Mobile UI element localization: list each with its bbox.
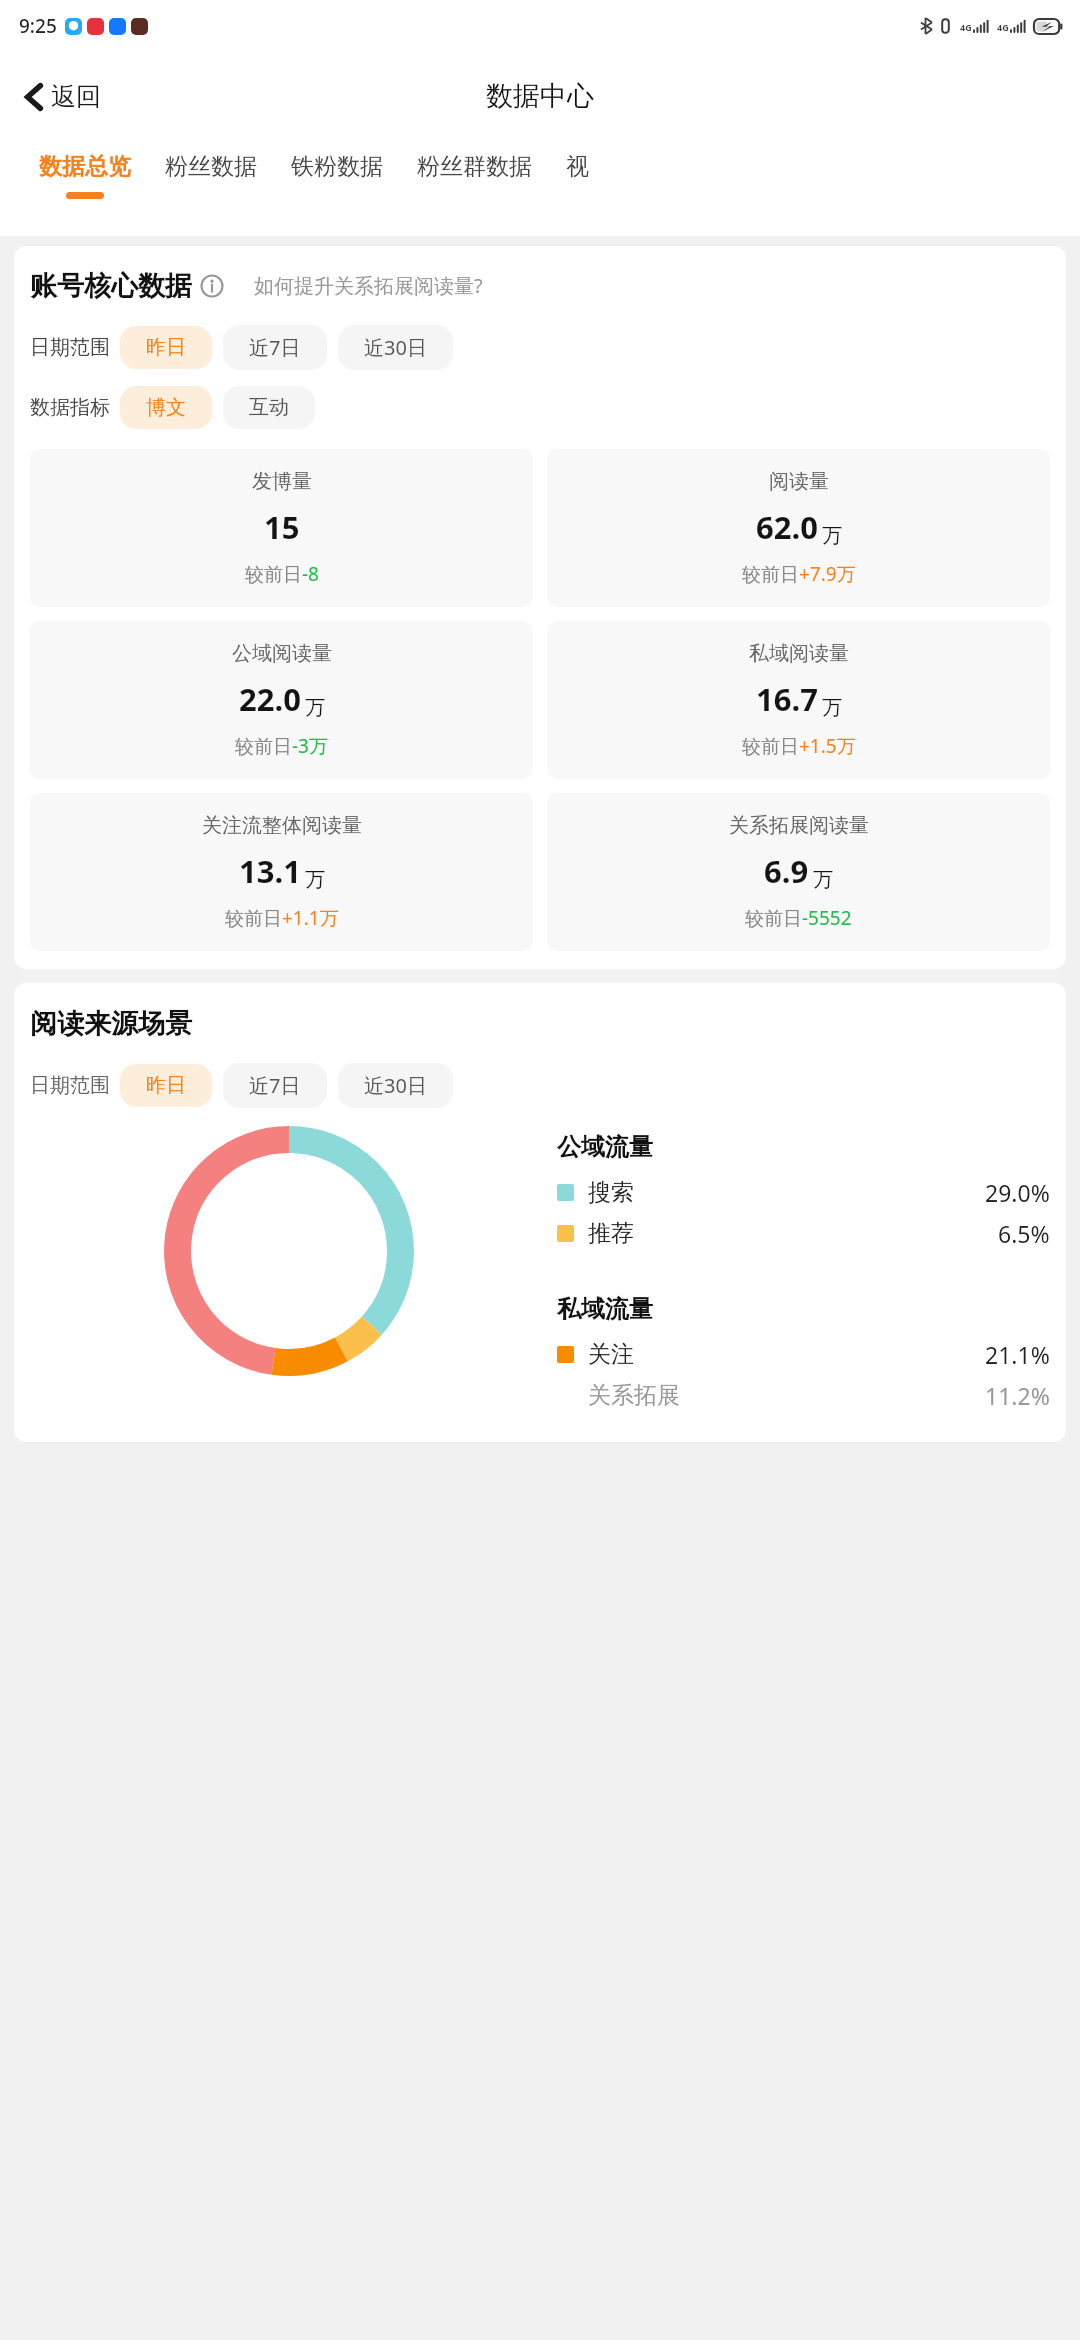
button[interactable]: 视 <box>549 140 606 192</box>
staticText: 返回 <box>51 81 101 112</box>
button[interactable]: 关注流整体阅读量 <box>30 793 533 951</box>
button[interactable]: 阅读量 <box>547 449 1050 607</box>
staticText: 近7日 <box>249 1072 301 1099</box>
staticText: 4G <box>997 21 1009 33</box>
staticText: 昨日 <box>146 1073 186 1098</box>
staticText: 公域流量 <box>557 1132 653 1162</box>
staticText: 推荐 <box>588 1219 634 1248</box>
staticText: 万 <box>822 695 842 720</box>
staticText: 日期范围 <box>30 1073 110 1098</box>
button[interactable]: 近30日 <box>338 325 453 370</box>
staticText: 发博量 <box>252 469 312 494</box>
staticText: 日期范围 <box>30 335 110 360</box>
staticText: 阅读来源场景 <box>30 1007 192 1041</box>
button[interactable]: 昨日 <box>120 1064 212 1107</box>
button[interactable]: 公域阅读量 <box>30 621 533 779</box>
button[interactable]: 关系拓展阅读量 <box>547 793 1050 951</box>
staticText: 11.2% <box>985 1380 1050 1411</box>
staticText: 29.0% <box>985 1177 1050 1208</box>
staticText: 账号核心数据 <box>30 269 192 303</box>
button[interactable]: 昨日 <box>120 326 212 369</box>
staticText: 近30日 <box>364 1072 427 1099</box>
button[interactable]: 关注 <box>557 1334 1050 1375</box>
staticText: 6.5% <box>998 1218 1050 1249</box>
button[interactable]: 数据总览 <box>22 140 148 199</box>
staticText: 万 <box>813 867 833 892</box>
staticText: 如何提升关系拓展阅读量? <box>254 272 483 299</box>
staticText: 万 <box>305 867 325 892</box>
button[interactable]: 近7日 <box>223 325 327 370</box>
staticText: 较前日-5552 <box>745 905 852 931</box>
button[interactable]: 近7日 <box>223 1063 327 1108</box>
staticText: 较前日+1.5万 <box>742 733 856 759</box>
button[interactable]: 博文 <box>120 386 212 429</box>
staticText: 13.1 <box>239 850 301 892</box>
staticText: 关注流整体阅读量 <box>202 813 362 838</box>
button[interactable]: 近30日 <box>338 1063 453 1108</box>
staticText: 私域阅读量 <box>749 641 849 666</box>
staticText: 较前日-8 <box>245 561 319 587</box>
staticText: 数据指标 <box>30 395 110 420</box>
staticText: 阅读量 <box>769 469 829 494</box>
staticText: 62.0 <box>756 506 818 548</box>
staticText: 私域流量 <box>557 1294 653 1324</box>
staticText: 万 <box>822 523 842 548</box>
staticText: 数据总览 <box>39 152 131 181</box>
button[interactable]: 说明 <box>200 274 224 298</box>
staticText: 较前日+1.1万 <box>225 905 339 931</box>
staticText: 粉丝群数据 <box>417 152 532 181</box>
staticText: 16.7 <box>756 678 818 720</box>
staticText: 铁粉数据 <box>291 152 383 181</box>
button[interactable]: 互动 <box>223 386 315 429</box>
staticText: 博文 <box>146 395 186 420</box>
staticText: 万 <box>305 695 325 720</box>
staticText: 公域阅读量 <box>232 641 332 666</box>
button[interactable]: 推荐 <box>557 1213 1050 1254</box>
staticText: 较前日+7.9万 <box>742 561 856 587</box>
staticText: 关系拓展阅读量 <box>729 813 869 838</box>
staticText: 互动 <box>249 395 289 420</box>
staticText: 视 <box>566 152 589 181</box>
staticText: 近30日 <box>364 334 427 361</box>
staticText: 搜索 <box>588 1178 634 1207</box>
staticText: 15 <box>264 506 300 548</box>
staticText: 9:25 <box>19 13 57 39</box>
staticText: 昨日 <box>146 335 186 360</box>
button[interactable]: 铁粉数据 <box>274 140 400 192</box>
button[interactable]: 粉丝数据 <box>148 140 274 192</box>
button[interactable]: 私域阅读量 <box>547 621 1050 779</box>
staticText: 关注 <box>588 1340 634 1369</box>
staticText: 22.0 <box>239 678 301 720</box>
staticText: 近7日 <box>249 334 301 361</box>
staticText: 21.1% <box>985 1339 1050 1370</box>
staticText: 较前日-3万 <box>235 733 328 759</box>
button[interactable]: 搜索 <box>557 1172 1050 1213</box>
button[interactable]: 发博量 <box>30 449 533 607</box>
staticText: 6.9 <box>764 850 809 892</box>
staticText: 粉丝数据 <box>165 152 257 181</box>
button[interactable]: 如何提升关系拓展阅读量? <box>254 268 483 303</box>
button[interactable]: 粉丝群数据 <box>400 140 549 192</box>
staticText: 关系拓展 <box>588 1381 680 1410</box>
staticText: 4G <box>960 21 972 33</box>
button[interactable]: 返回 <box>16 75 109 118</box>
staticText: 数据中心 <box>486 79 594 113</box>
